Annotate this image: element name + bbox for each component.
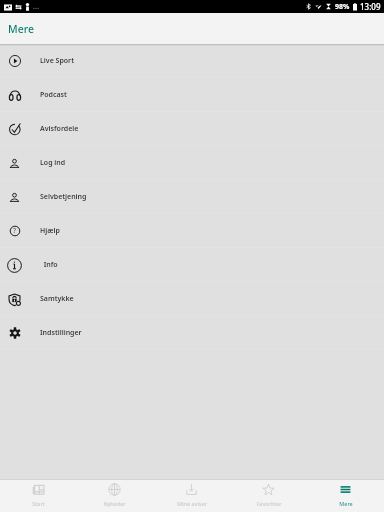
staticText: Selvbetjening [40, 192, 87, 202]
staticText: Log ind [40, 158, 66, 168]
other: Start [32, 483, 45, 496]
button[interactable]: Podcast [0, 78, 384, 112]
other: Favoritter [262, 483, 275, 496]
other: Nyheder [108, 483, 121, 496]
button[interactable]: Selvbetjening [0, 180, 384, 214]
staticText: 98% [335, 2, 350, 12]
button[interactable]: Log ind [0, 146, 384, 180]
staticText: Info [40, 260, 58, 270]
staticText: Mine aviser [177, 500, 207, 507]
staticText: Indstillinger [40, 328, 82, 338]
button[interactable]: Mine aviser [153, 480, 230, 512]
staticText: Favoritter [256, 500, 282, 507]
staticText: 13:09 [360, 1, 381, 12]
other: Mine aviser [185, 483, 198, 496]
staticText: Start [32, 500, 45, 507]
staticText: ? [13, 226, 17, 236]
staticText: Samtykke [40, 294, 74, 304]
button[interactable]: ? [0, 214, 384, 248]
button[interactable]: Avisfordele [0, 112, 384, 146]
button[interactable]: Favoritter [230, 480, 307, 512]
button[interactable]: Samtykke [0, 282, 384, 316]
staticText: Podcast [40, 90, 67, 100]
staticText: Live Sport [40, 56, 74, 66]
staticText: Mere [339, 500, 353, 507]
other: Mere [339, 483, 352, 496]
staticText: Mere [8, 22, 34, 36]
button[interactable]: Start [0, 480, 76, 512]
button[interactable]: Info [0, 248, 384, 282]
button[interactable]: Nyheder [76, 480, 153, 512]
button[interactable]: Indstillinger [0, 316, 384, 350]
staticText: Hjælp [40, 226, 60, 236]
button[interactable]: Mere [307, 480, 384, 512]
staticText: Avisfordele [40, 124, 79, 134]
button[interactable]: Live Sport [0, 44, 384, 78]
staticText: Nyheder [103, 500, 126, 507]
